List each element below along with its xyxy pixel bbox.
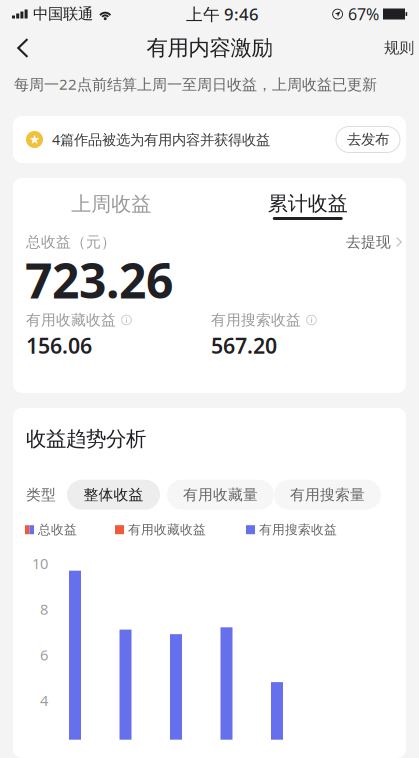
staticText: 有用收藏收益 xyxy=(128,522,206,538)
staticText: 规则 xyxy=(384,38,414,58)
staticText: 上午 9:46 xyxy=(186,3,259,25)
staticText: 总收益（元） xyxy=(26,233,116,251)
button[interactable]: 规则 xyxy=(379,26,419,70)
staticText: 有用收藏量 xyxy=(183,485,258,504)
button[interactable]: 有用搜索量 xyxy=(274,480,381,510)
staticText: 4篇作品被选为有用内容并获得收益 xyxy=(52,130,270,149)
staticText: 累计收益 xyxy=(268,191,348,216)
staticText: 4 xyxy=(40,690,48,710)
staticText: 有用内容激励 xyxy=(146,35,272,61)
staticText: 类型 xyxy=(26,485,56,504)
staticText: 567.20 xyxy=(211,331,277,360)
button[interactable]: 整体收益 xyxy=(67,480,160,510)
staticText: 中国联通 xyxy=(33,4,93,24)
button[interactable]: 去发布 xyxy=(336,126,406,152)
staticText: 有用搜索收益 xyxy=(211,311,301,329)
staticText: 整体收益 xyxy=(83,485,143,504)
button[interactable]: 有用收藏量 xyxy=(167,480,274,510)
staticText: 上周收益 xyxy=(71,191,151,217)
button[interactable]: 去提现 xyxy=(346,230,402,254)
staticText: 10 xyxy=(32,553,48,573)
staticText: 每周一22点前结算上周一至周日收益，上周收益已更新 xyxy=(14,74,377,94)
staticText: 有用搜索收益 xyxy=(259,522,337,538)
staticText: 有用收藏收益 xyxy=(26,311,116,329)
staticText: 156.06 xyxy=(26,331,92,360)
button[interactable]: 累计收益 xyxy=(209,178,406,230)
staticText: 723.26 xyxy=(25,247,173,313)
button[interactable]: 上周收益 xyxy=(13,178,209,230)
staticText: 去发布 xyxy=(347,130,389,148)
staticText: 6 xyxy=(40,645,48,665)
staticText: 收益趋势分析 xyxy=(26,426,146,452)
staticText: 67% xyxy=(348,3,379,25)
staticText: 8 xyxy=(40,599,48,619)
staticText: 有用搜索量 xyxy=(290,485,365,504)
button[interactable]: Back xyxy=(0,26,46,70)
staticText: 总收益 xyxy=(38,522,77,538)
staticText: 去提现 xyxy=(346,233,391,251)
